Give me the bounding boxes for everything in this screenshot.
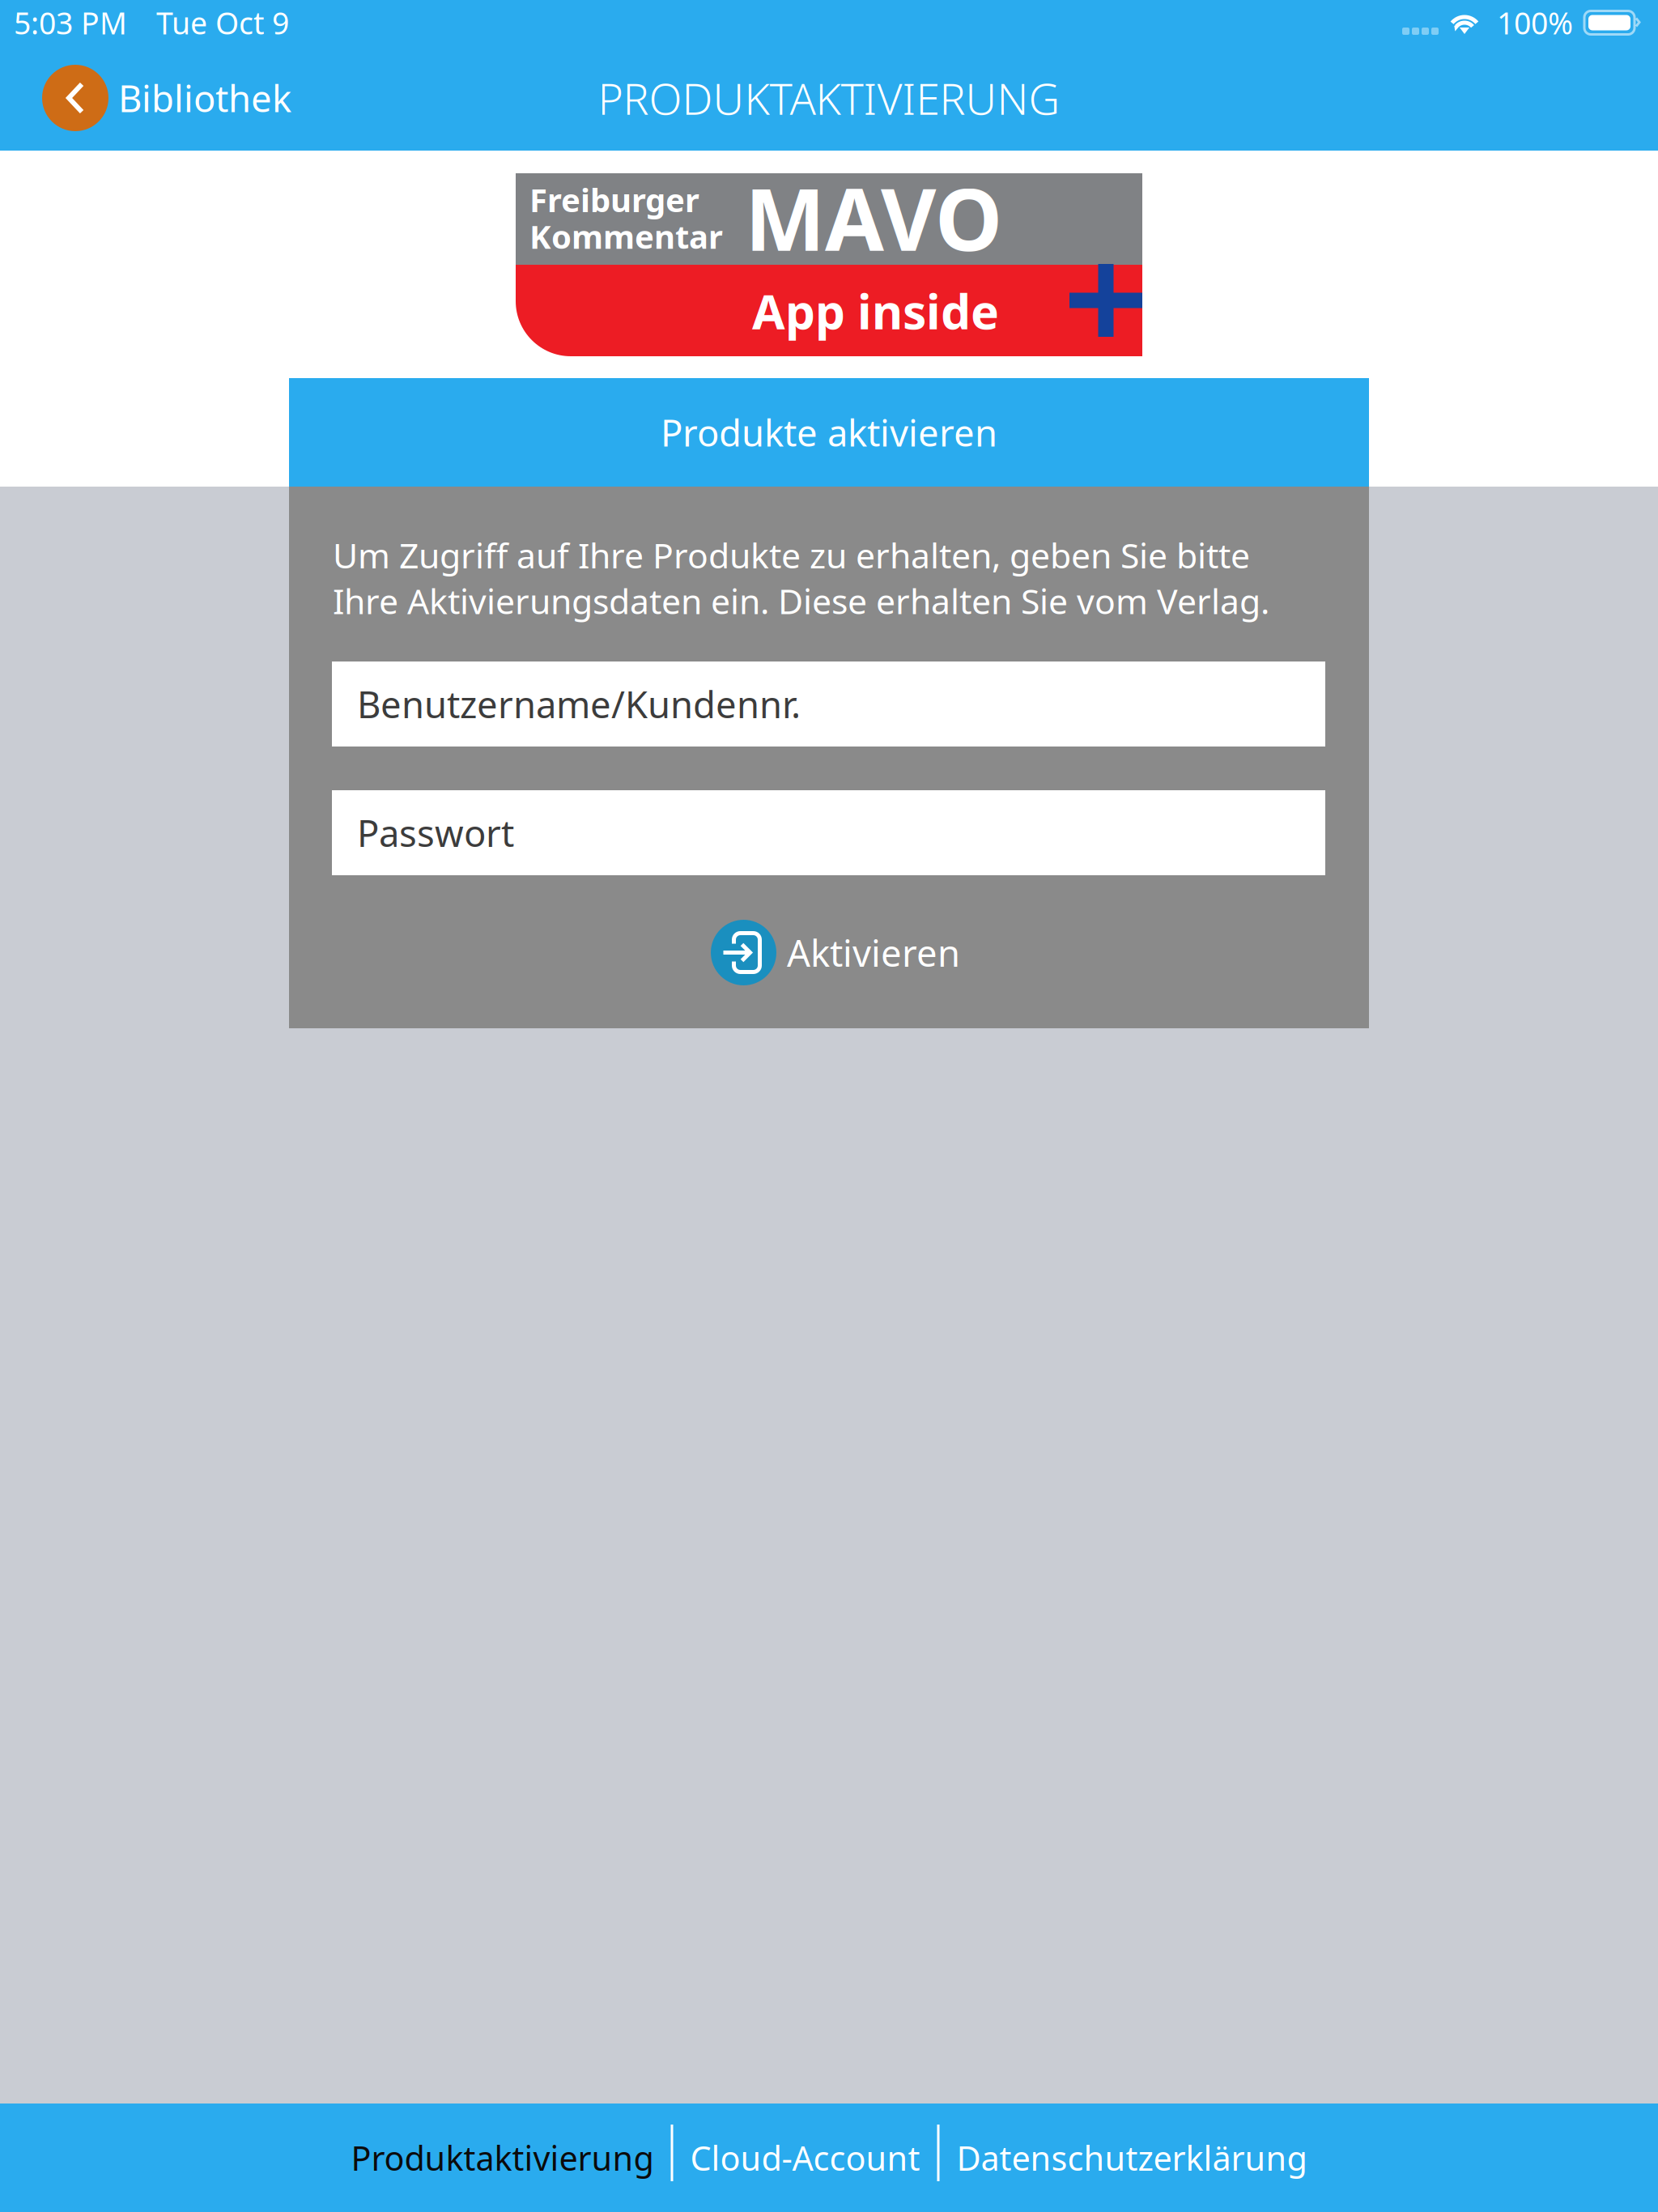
button[interactable]: Datenschutzerklärung xyxy=(940,2110,1324,2205)
button[interactable]: Produktaktivierung xyxy=(334,2110,671,2205)
staticText: PRODUKTAKTIVIERUNG xyxy=(598,69,1060,127)
staticText: Aktivieren xyxy=(787,928,960,977)
staticText: Cloud-Account xyxy=(690,2136,920,2180)
staticText: Passwort xyxy=(357,808,514,857)
staticText: Benutzername/Kundennr. xyxy=(357,680,801,728)
button[interactable]: Benutzername/Kundennr. xyxy=(332,661,1325,747)
staticText: Produkte aktivieren xyxy=(661,408,997,457)
staticText: App inside xyxy=(752,279,999,342)
staticText: Freiburger xyxy=(529,178,699,221)
staticText: MAVO xyxy=(745,161,1002,274)
staticText: 5:03 PM xyxy=(14,3,127,43)
button[interactable]: Passwort xyxy=(332,790,1325,875)
staticText: Um Zugriff auf Ihre Produkte zu erhalten… xyxy=(333,532,1269,624)
button[interactable]: Zurück zur Bibliothek xyxy=(42,55,291,141)
button[interactable]: Cloud-Account xyxy=(673,2110,937,2205)
staticText: Bibliothek xyxy=(118,74,291,122)
button[interactable]: Aktivieren xyxy=(711,920,960,985)
staticText: Datenschutzerklärung xyxy=(957,2136,1307,2180)
staticText: Kommentar xyxy=(529,215,723,258)
staticText: Tue Oct 9 xyxy=(156,3,289,43)
staticText: 100% xyxy=(1497,3,1573,43)
staticText: Produktaktivierung xyxy=(351,2136,654,2180)
